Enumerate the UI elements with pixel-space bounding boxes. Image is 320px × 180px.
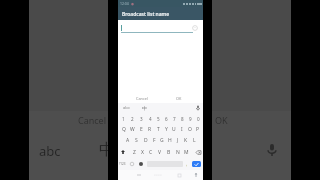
button[interactable]: ?123 [118, 158, 127, 170]
staticText: ● [131, 2, 134, 6]
staticText: J [177, 137, 179, 144]
staticText: E [140, 126, 143, 133]
staticText: T [157, 126, 160, 133]
button[interactable]: Recents [175, 170, 184, 180]
button[interactable]: Shift [118, 146, 127, 158]
staticText: 1 [122, 116, 125, 122]
staticText: 8 [181, 116, 184, 122]
button[interactable]: D [141, 135, 150, 146]
button[interactable]: , [184, 158, 190, 170]
button[interactable]: H [166, 135, 174, 146]
button[interactable]: abc [123, 105, 130, 111]
staticText: Q [122, 126, 126, 133]
staticText: 4 [149, 116, 152, 122]
staticText: R [148, 126, 152, 133]
button[interactable]: Voice input [195, 105, 201, 111]
button[interactable]: C [146, 146, 155, 158]
staticText: W [130, 126, 135, 133]
button[interactable]: W [128, 124, 137, 135]
button[interactable]: 2 [128, 113, 137, 124]
button[interactable]: Y [162, 124, 170, 135]
staticText: I [181, 126, 183, 133]
button[interactable]: Back [134, 170, 144, 180]
button[interactable]: T [154, 124, 162, 135]
button[interactable]: 9 [186, 113, 194, 124]
button[interactable]: Enter [192, 161, 201, 167]
button[interactable]: A [123, 135, 132, 146]
staticText: Y [165, 126, 168, 133]
staticText: U [172, 126, 176, 133]
button[interactable]: P [194, 124, 202, 135]
button[interactable]: N [173, 146, 182, 158]
button[interactable]: 中 [142, 105, 147, 111]
staticText: P [196, 126, 200, 133]
staticText: abc [39, 142, 61, 160]
button[interactable]: Emoji [191, 24, 199, 32]
button[interactable]: OK [176, 96, 182, 101]
staticText: B [167, 149, 171, 156]
button[interactable]: Switch language [127, 158, 136, 170]
button[interactable]: V [155, 146, 164, 158]
staticText: 2 [131, 116, 134, 122]
staticText: Cancel [78, 114, 107, 126]
button[interactable]: 3 [137, 113, 146, 124]
button[interactable]: M [182, 146, 191, 158]
button[interactable]: F [150, 135, 158, 146]
staticText: X [141, 149, 144, 156]
staticText: G [160, 137, 164, 144]
staticText: 9 [189, 116, 192, 122]
staticText: K [184, 137, 188, 144]
button[interactable]: S [132, 135, 141, 146]
button[interactable]: Cancel [136, 96, 148, 101]
button[interactable]: 6 [162, 113, 170, 124]
staticText: V [158, 149, 162, 156]
staticText: L [193, 137, 196, 144]
button[interactable]: O [186, 124, 194, 135]
button[interactable]: Emoji [136, 158, 146, 170]
button[interactable]: Input method [192, 170, 200, 180]
staticText: H [168, 137, 172, 144]
staticText: Broadcast list name [122, 11, 170, 18]
button[interactable]: 0 [194, 113, 202, 124]
staticText: D [144, 137, 148, 144]
staticText: , [186, 161, 188, 167]
staticText: 中 [99, 140, 115, 160]
button[interactable]: Backspace [194, 146, 203, 158]
button[interactable]: I [178, 124, 186, 135]
staticText: N [176, 149, 180, 156]
staticText: M [184, 149, 189, 156]
staticText: 12:04 [120, 1, 129, 6]
button[interactable]: X [138, 146, 146, 158]
staticText: OK [215, 114, 228, 126]
button[interactable]: J [174, 135, 182, 146]
button[interactable]: E [137, 124, 146, 135]
button[interactable]: G [158, 135, 166, 146]
staticText: S [135, 137, 138, 144]
staticText: Z [133, 149, 136, 156]
staticText: F [153, 137, 156, 144]
staticText: C [149, 149, 153, 156]
staticText: A [126, 137, 130, 144]
button[interactable]: Z [130, 146, 138, 158]
button[interactable]: 5 [154, 113, 162, 124]
staticText: 7 [173, 116, 176, 122]
button[interactable]: 1 [119, 113, 128, 124]
staticText: 3 [140, 116, 143, 122]
staticText: ?123 [119, 162, 126, 166]
button[interactable]: U [170, 124, 178, 135]
staticText: 0 [197, 116, 200, 122]
button[interactable]: 8 [178, 113, 186, 124]
button[interactable]: R [146, 124, 154, 135]
button[interactable]: B [164, 146, 173, 158]
button[interactable]: Q [119, 124, 128, 135]
staticText: 6 [165, 116, 168, 122]
button[interactable]: 4 [146, 113, 154, 124]
button[interactable]: L [190, 135, 198, 146]
button[interactable]: 7 [170, 113, 178, 124]
staticText: O [188, 126, 192, 133]
button[interactable]: K [182, 135, 190, 146]
staticText: 5 [157, 116, 160, 122]
